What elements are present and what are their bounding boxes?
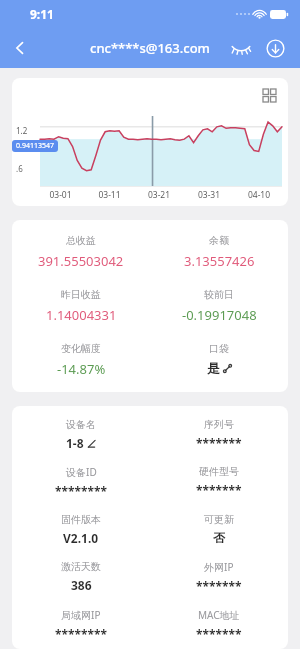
- button[interactable]: 局域网IP: [12, 608, 150, 641]
- button[interactable]: 总收益: [12, 232, 150, 272]
- staticText: *******: [196, 435, 242, 451]
- staticText: ********: [55, 626, 108, 641]
- button[interactable]: Back: [0, 28, 40, 68]
- staticText: 9:11: [30, 6, 54, 22]
- button[interactable]: Grid view: [12, 78, 288, 206]
- staticText: 外网IP: [204, 560, 234, 574]
- button[interactable]: 外网IP: [150, 560, 288, 594]
- staticText: 硬件型号: [199, 465, 239, 478]
- staticText: 激活天数: [61, 560, 101, 573]
- staticText: MAC地址: [198, 608, 240, 622]
- staticText: 是: [207, 360, 220, 376]
- button[interactable]: 昨日收益: [12, 286, 150, 326]
- staticText: 03-01: [36, 189, 85, 201]
- staticText: *******: [196, 482, 242, 498]
- button[interactable]: 变化幅度: [12, 340, 150, 380]
- staticText: 设备名: [66, 418, 96, 431]
- staticText: 设备ID: [66, 465, 97, 479]
- staticText: 04-10: [234, 189, 284, 201]
- staticText: V2.1.0: [63, 530, 99, 546]
- button[interactable]: 激活天数: [12, 560, 150, 593]
- button[interactable]: 设备名: [12, 418, 150, 451]
- staticText: ********: [55, 483, 108, 499]
- button[interactable]: Hide balance: [224, 31, 258, 65]
- staticText: 1.2: [16, 125, 28, 136]
- staticText: 变化幅度: [61, 342, 101, 355]
- button[interactable]: 固件版本: [12, 513, 150, 546]
- button[interactable]: MAC地址: [150, 608, 288, 641]
- staticText: 03-21: [134, 189, 184, 201]
- button[interactable]: 序列号: [150, 418, 288, 451]
- staticText: 固件版本: [61, 513, 101, 526]
- staticText: cnc****s@163.com: [90, 39, 210, 57]
- staticText: 0.94113547: [16, 141, 54, 151]
- staticText: 1.14004331: [46, 306, 117, 324]
- staticText: 序列号: [204, 418, 234, 431]
- staticText: 03-11: [85, 189, 134, 201]
- staticText: -0.19917048: [182, 306, 257, 324]
- button[interactable]: 硬件型号: [150, 465, 288, 498]
- button[interactable]: Grid view: [258, 84, 280, 106]
- button[interactable]: Download: [258, 31, 292, 65]
- staticText: 总收益: [66, 234, 96, 247]
- staticText: *******: [196, 578, 242, 594]
- staticText: 否: [213, 530, 225, 545]
- staticText: .6: [16, 163, 23, 174]
- staticText: 昨日收益: [61, 288, 101, 301]
- button[interactable]: 较前日: [150, 286, 288, 326]
- staticText: 1-8: [66, 435, 84, 451]
- staticText: 局域网IP: [61, 608, 101, 622]
- staticText: -14.87%: [57, 360, 106, 378]
- staticText: 余额: [209, 234, 229, 247]
- button[interactable]: 口袋: [150, 340, 288, 378]
- staticText: 3.13557426: [184, 252, 255, 270]
- staticText: 03-31: [184, 189, 234, 201]
- button[interactable]: 余额: [150, 232, 288, 272]
- staticText: 386: [71, 577, 92, 593]
- staticText: 可更新: [204, 513, 234, 526]
- staticText: 较前日: [204, 288, 234, 301]
- staticText: *******: [196, 626, 242, 641]
- staticText: 391.55503042: [38, 252, 124, 270]
- staticText: 口袋: [209, 342, 229, 355]
- button[interactable]: 可更新: [150, 513, 288, 545]
- button[interactable]: 设备ID: [12, 465, 150, 499]
